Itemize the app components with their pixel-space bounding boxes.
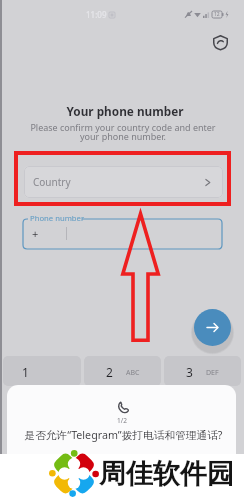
staticText: 是否允许“Telegram”拨打电话和管理通话? <box>9 428 236 443</box>
button[interactable]: 2 <box>84 356 161 386</box>
staticText: DEF <box>206 368 219 378</box>
button[interactable]: Next <box>194 309 231 346</box>
button[interactable]: Proxy settings <box>208 30 232 54</box>
staticText: ABC <box>126 368 140 378</box>
staticText: Your phone number <box>3 103 244 119</box>
staticText: Phone number <box>30 213 85 223</box>
staticText: + <box>32 226 39 241</box>
staticText: Please confirm your country code and ent… <box>29 121 217 143</box>
button[interactable]: 3 <box>164 356 241 386</box>
staticText: 1/2 <box>117 416 127 425</box>
staticText: 1 <box>22 364 29 380</box>
button[interactable]: Country <box>24 166 223 198</box>
staticText: 周佳软件园 <box>99 457 234 491</box>
staticText: 2 <box>106 364 113 380</box>
button[interactable]: 1 <box>3 356 81 386</box>
staticText: 12 <box>214 11 220 18</box>
staticText: Country <box>33 175 71 189</box>
staticText: 11:09 <box>86 9 107 20</box>
staticText: 3 <box>186 364 193 380</box>
